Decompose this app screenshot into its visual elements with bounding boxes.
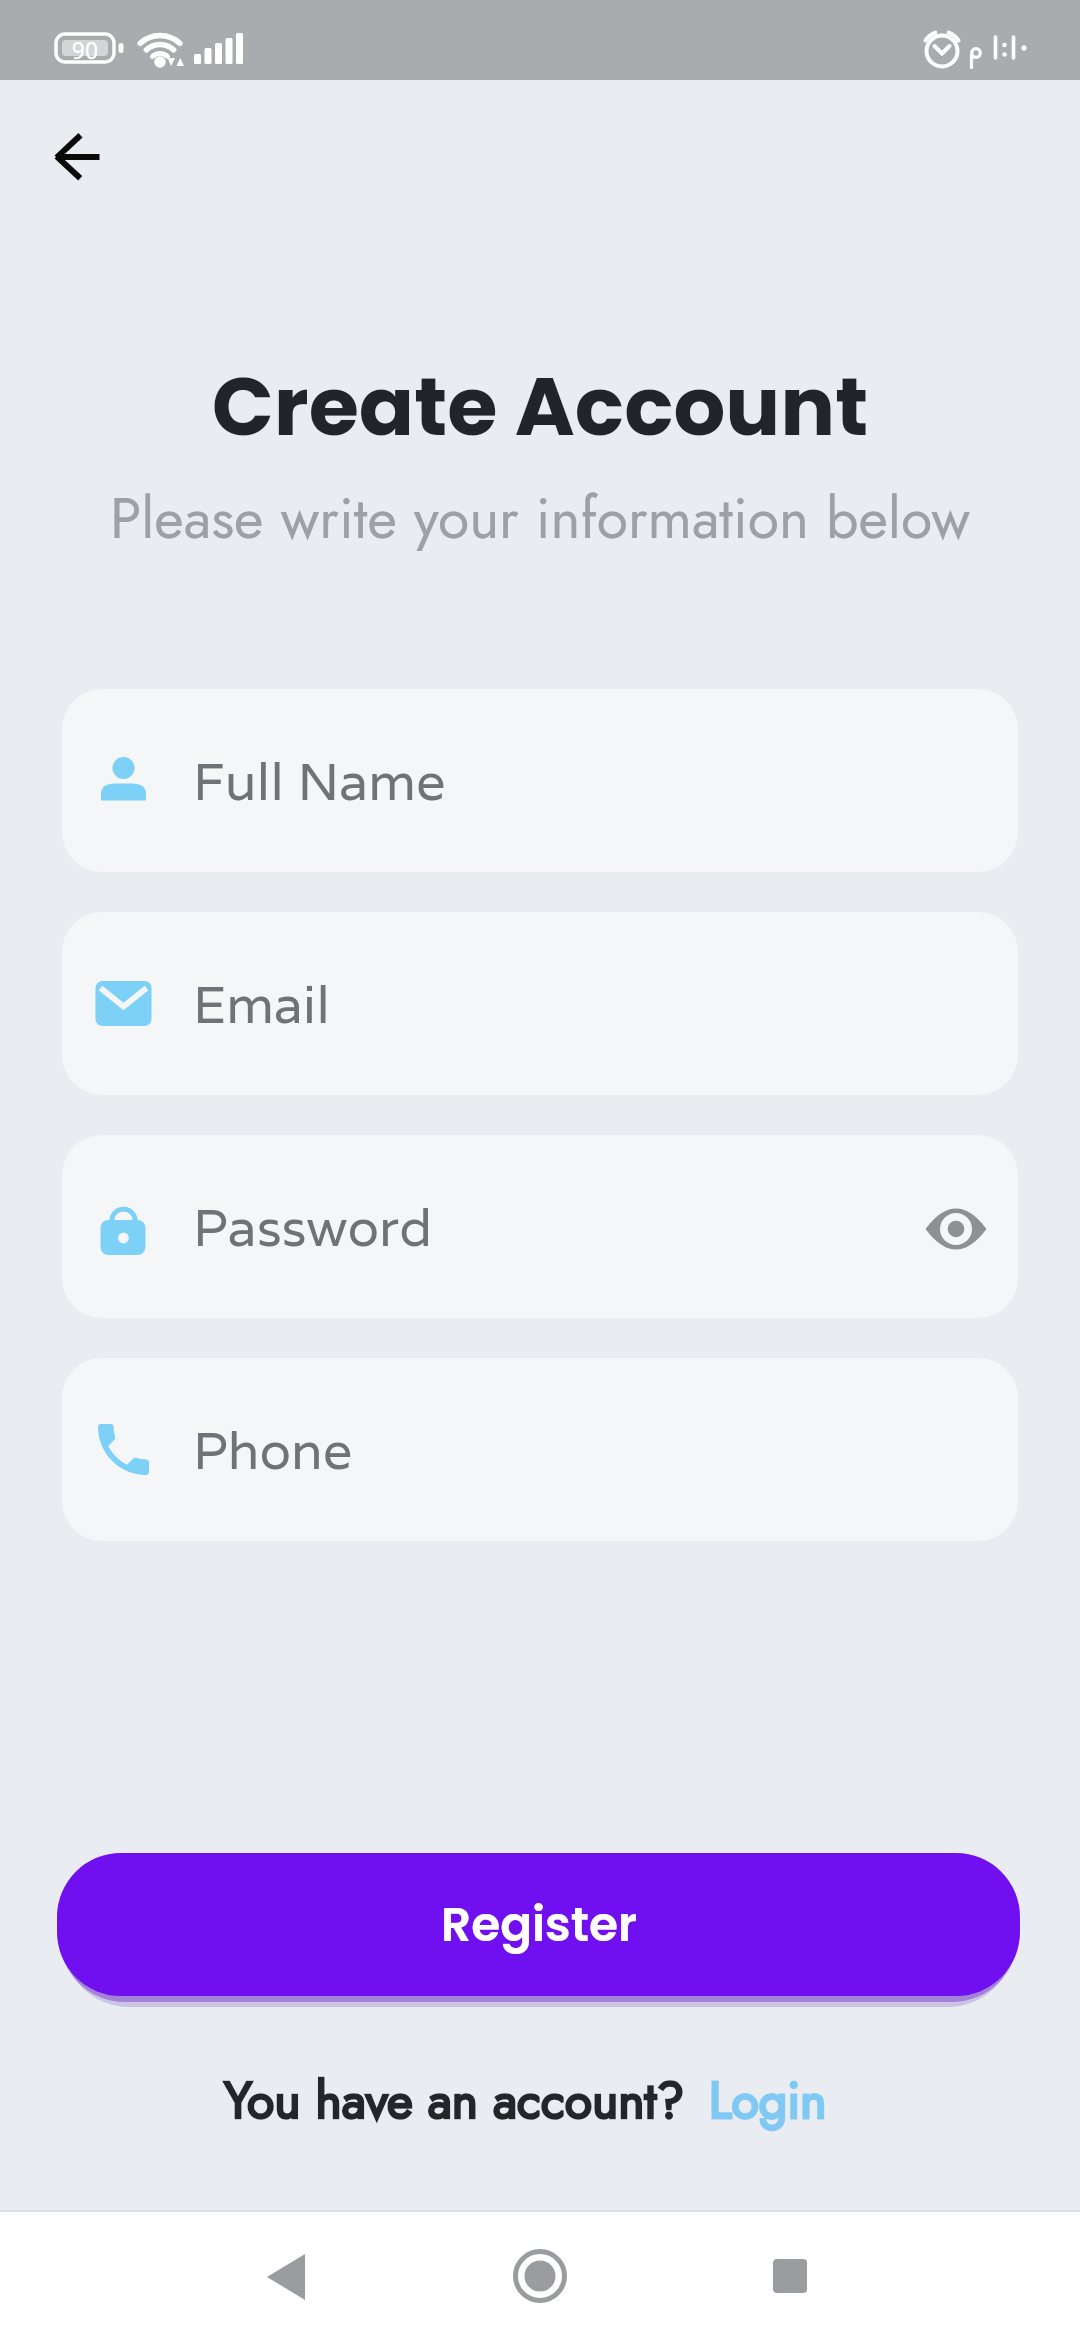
- button[interactable]: Email: [62, 912, 1018, 1095]
- button[interactable]: [360, 2210, 720, 2340]
- button[interactable]: Phone: [62, 1358, 1018, 1541]
- staticText: Full Name: [193, 747, 446, 815]
- staticText: You have an account?: [224, 2064, 685, 2136]
- staticText: Login: [709, 2064, 827, 2136]
- button[interactable]: [0, 2210, 360, 2340]
- staticText: Login: [709, 2064, 827, 2136]
- staticText: Please write your information below: [0, 477, 1080, 559]
- staticText: Email: [193, 970, 330, 1038]
- staticText: Phone: [193, 1416, 353, 1484]
- staticText: 90: [62, 34, 108, 65]
- button[interactable]: Full Name: [62, 689, 1018, 872]
- button[interactable]: Register: [57, 1853, 1020, 1996]
- staticText: Register: [441, 1892, 637, 1958]
- staticText: You have an account?: [224, 2064, 685, 2136]
- staticText: Create Account: [0, 349, 1080, 463]
- button[interactable]: [720, 2210, 1080, 2340]
- button[interactable]: [48, 127, 108, 187]
- button[interactable]: [920, 1193, 992, 1265]
- button[interactable]: Password: [62, 1135, 1018, 1318]
- staticText: Password: [193, 1193, 432, 1261]
- button[interactable]: Login: [709, 2064, 827, 2136]
